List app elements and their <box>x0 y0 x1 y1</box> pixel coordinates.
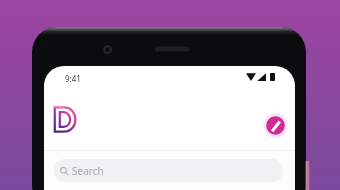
staticText: 9:41 <box>65 73 81 84</box>
button[interactable]: Compose shot <box>262 112 289 139</box>
staticText: Search <box>72 164 104 178</box>
button[interactable]: Dribbble home <box>53 105 79 134</box>
button[interactable]: Search <box>54 159 283 182</box>
